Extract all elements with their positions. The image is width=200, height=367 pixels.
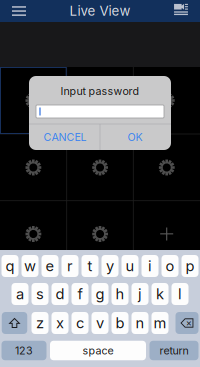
- button[interactable]: m: [151, 312, 168, 334]
- staticText: r: [67, 257, 73, 275]
- staticText: l: [178, 285, 182, 303]
- button[interactable]: r: [61, 255, 78, 277]
- staticText: b: [115, 314, 124, 332]
- button[interactable]: u: [121, 255, 138, 277]
- staticText: ×: [186, 317, 192, 329]
- button[interactable]: space: [50, 341, 146, 360]
- button[interactable]: x: [51, 312, 68, 334]
- button[interactable]: w: [21, 255, 38, 277]
- button[interactable]: v: [91, 312, 108, 334]
- staticText: i: [148, 257, 152, 275]
- button[interactable]: Camera: [18, 85, 48, 115]
- staticText: g: [95, 285, 104, 303]
- staticText: y: [106, 257, 114, 275]
- staticText: u: [125, 257, 134, 275]
- staticText: m: [153, 314, 166, 332]
- staticText: Live View: [69, 3, 130, 19]
- button[interactable]: q: [1, 255, 18, 277]
- button[interactable]: 123: [1, 341, 46, 360]
- button[interactable]: Camera: [85, 219, 115, 249]
- button[interactable]: Camera list: [170, 0, 192, 20]
- button[interactable]: Camera: [18, 219, 48, 249]
- staticText: v: [96, 314, 104, 332]
- button[interactable]: g: [91, 283, 108, 305]
- button[interactable]: s: [31, 283, 48, 305]
- button[interactable]: c: [71, 312, 88, 334]
- staticText: h: [115, 285, 124, 303]
- button[interactable]: f: [71, 283, 88, 305]
- staticText: q: [5, 257, 14, 275]
- staticText: f: [77, 285, 82, 303]
- button[interactable]: i: [141, 255, 158, 277]
- button[interactable]: Delete: [175, 312, 198, 334]
- button[interactable]: k: [151, 283, 168, 305]
- staticText: x: [56, 314, 64, 332]
- staticText: return: [159, 344, 188, 357]
- button[interactable]: Camera: [85, 152, 115, 182]
- staticText: e: [45, 257, 54, 275]
- staticText: z: [36, 314, 44, 332]
- button[interactable]: Camera: [152, 152, 182, 182]
- staticText: c: [76, 314, 84, 332]
- staticText: Input password: [60, 84, 139, 97]
- staticText: OK: [127, 130, 142, 143]
- button[interactable]: l: [171, 283, 188, 305]
- staticText: k: [156, 285, 164, 303]
- button[interactable]: Camera: [18, 152, 48, 182]
- button[interactable]: z: [31, 312, 48, 334]
- button[interactable]: return: [149, 341, 198, 360]
- staticText: o: [165, 257, 174, 275]
- staticText: w: [24, 257, 36, 275]
- button[interactable]: j: [131, 283, 148, 305]
- staticText: n: [135, 314, 144, 332]
- button[interactable]: Camera: [152, 85, 182, 115]
- button[interactable]: b: [111, 312, 128, 334]
- button[interactable]: e: [41, 255, 58, 277]
- button[interactable]: Camera: [85, 85, 115, 115]
- button[interactable]: o: [161, 255, 178, 277]
- staticText: s: [36, 285, 44, 303]
- staticText: 123: [15, 344, 33, 357]
- staticText: p: [185, 257, 194, 275]
- button[interactable]: Shift: [2, 312, 27, 334]
- staticText: space: [82, 344, 113, 357]
- button[interactable]: p: [181, 255, 198, 277]
- button[interactable]: Add camera: [152, 219, 182, 249]
- button[interactable]: OK: [100, 124, 170, 149]
- button[interactable]: t: [81, 255, 98, 277]
- button[interactable]: n: [131, 312, 148, 334]
- button[interactable]: h: [111, 283, 128, 305]
- button[interactable]: CANCEL: [30, 124, 100, 149]
- staticText: a: [16, 285, 24, 303]
- button[interactable]: y: [101, 255, 118, 277]
- staticText: t: [87, 257, 92, 275]
- button[interactable]: d: [51, 283, 68, 305]
- staticText: d: [55, 285, 64, 303]
- button[interactable]: a: [11, 283, 28, 305]
- staticText: CANCEL: [43, 130, 86, 143]
- staticText: j: [138, 285, 142, 303]
- button[interactable]: Menu: [6, 0, 32, 22]
